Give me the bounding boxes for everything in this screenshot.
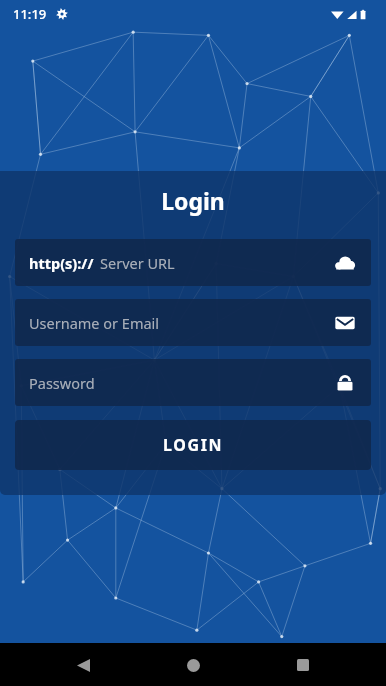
button[interactable]: Recent apps: [288, 650, 318, 680]
other: Password: [334, 372, 356, 394]
staticText: 11:19: [13, 5, 47, 23]
button[interactable]: Home: [178, 650, 208, 680]
staticText: http(s)://: [29, 253, 94, 273]
button[interactable]: Back: [68, 650, 98, 680]
button[interactable]: Password: [15, 359, 371, 406]
staticText: Server URL: [100, 253, 175, 273]
staticText: Login: [15, 185, 371, 216]
other: Username or Email: [334, 312, 356, 334]
button[interactable]: Username or Email: [15, 299, 371, 346]
button[interactable]: LOGIN: [15, 420, 371, 470]
other: Server URL: [334, 252, 356, 274]
staticText: LOGIN: [163, 434, 224, 456]
staticText: Password: [29, 373, 95, 393]
button[interactable]: http(s)://: [15, 239, 371, 286]
staticText: Username or Email: [29, 313, 160, 333]
